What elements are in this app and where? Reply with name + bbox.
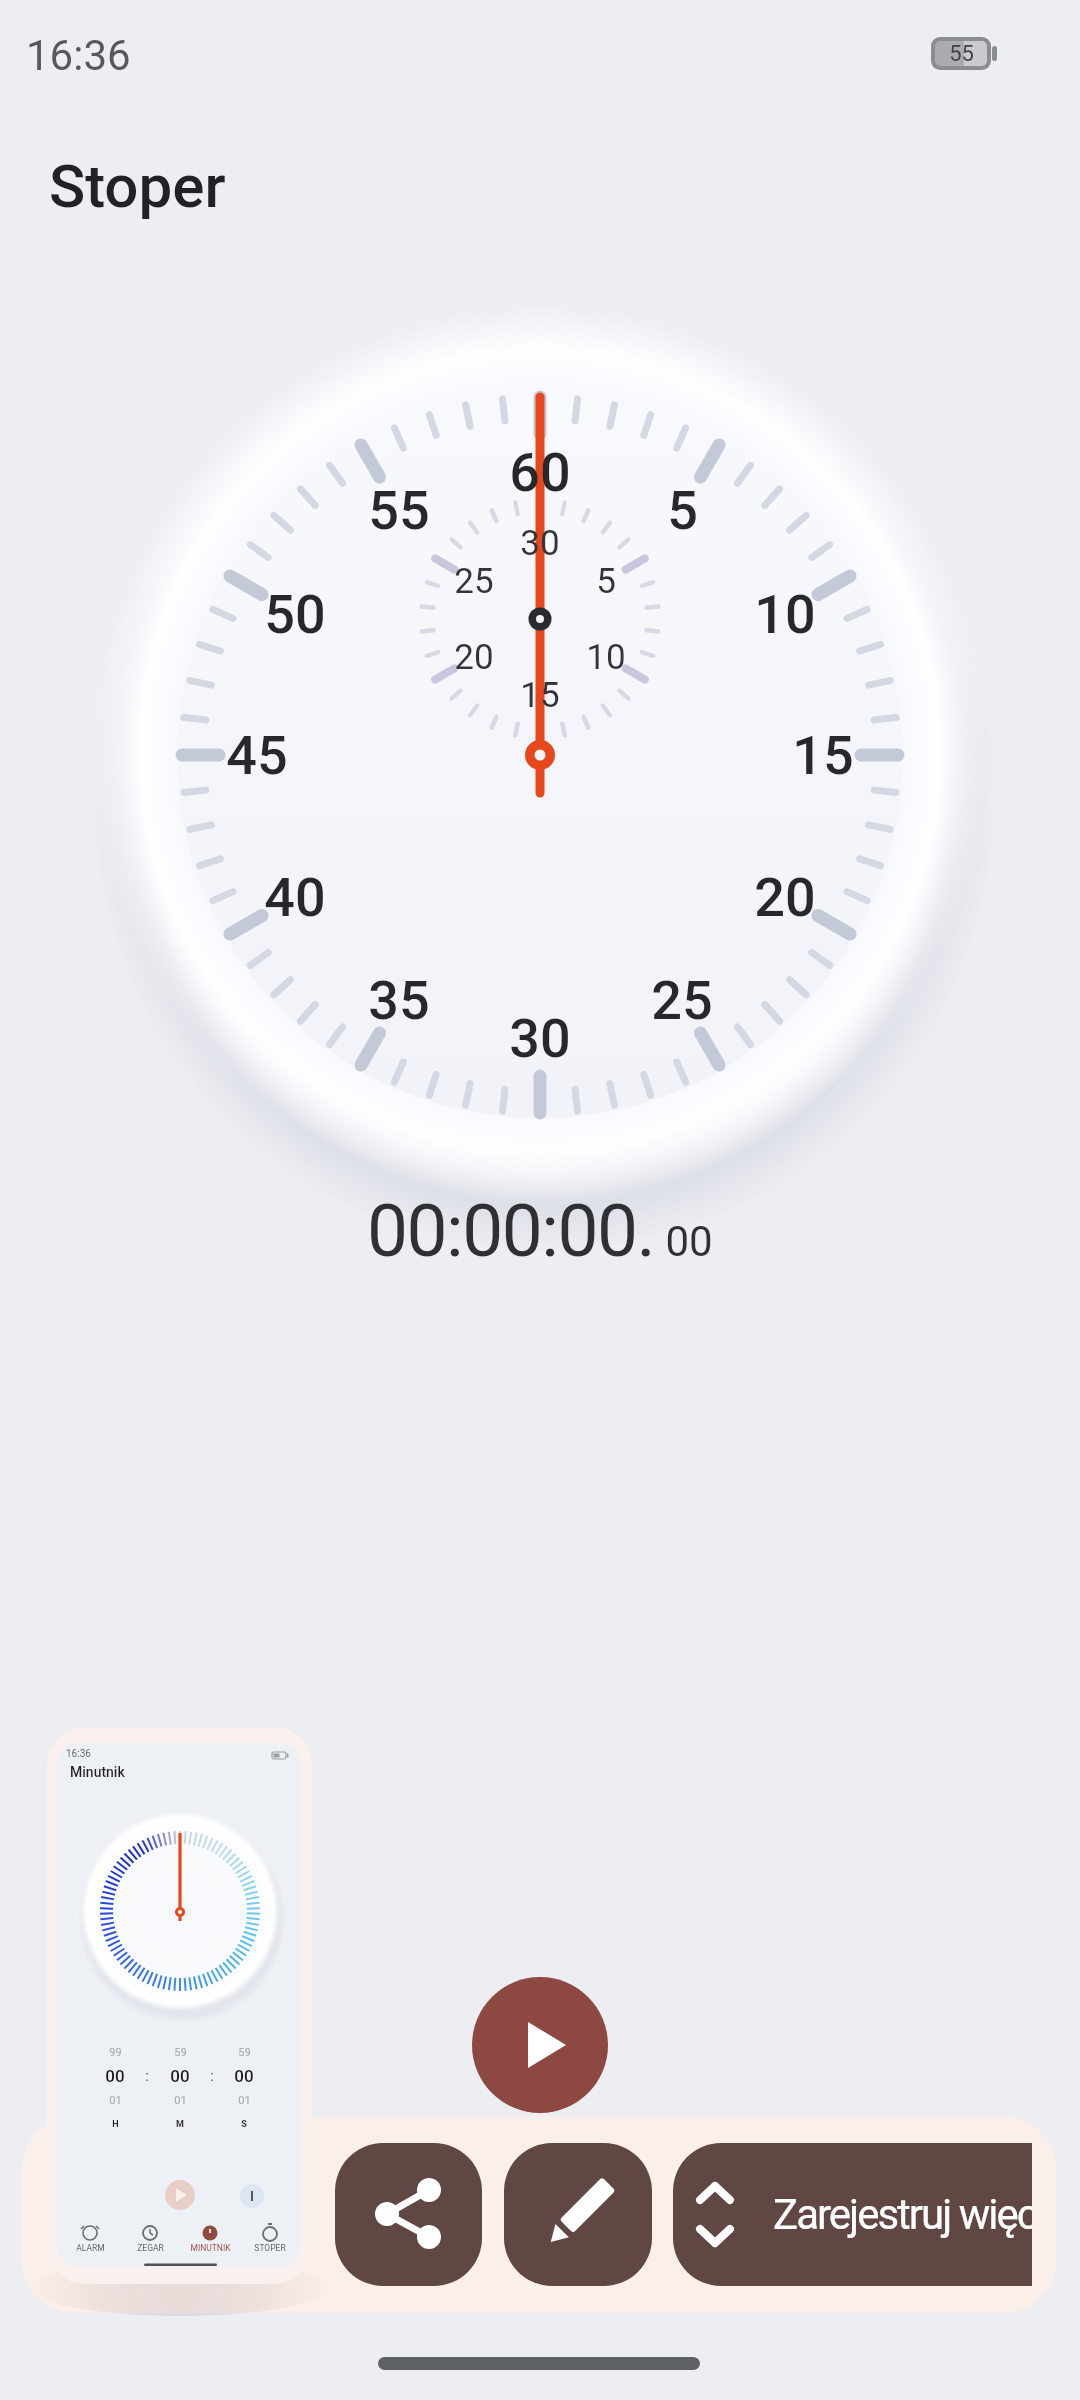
staticText: 01 [109,2094,122,2107]
staticText: M [176,2119,184,2130]
staticText: 20 [754,866,816,929]
staticText: Stoper [49,151,226,221]
staticText: 99 [109,2046,122,2059]
staticText: 00 [655,1217,713,1266]
staticText: S [241,2119,247,2130]
button[interactable]: Zarejestruj więcej [673,2143,1032,2286]
staticText: 59 [174,2046,187,2059]
staticText: 00 [105,2066,125,2086]
staticText: 55 [949,41,974,67]
staticText: 00 [234,2066,254,2086]
staticText: 30 [520,523,560,564]
staticText: 16:36 [66,1748,91,1760]
staticText: 30 [509,1007,571,1070]
button[interactable] [472,1977,608,2113]
button[interactable] [47,1727,312,2284]
button[interactable] [504,2143,652,2286]
staticText: 40 [264,866,326,929]
staticText: 15 [520,675,560,716]
staticText: 5 [596,561,616,602]
staticText: 15 [792,724,854,787]
staticText: ALARM [76,2243,105,2253]
staticText: 00:00:00. [367,1188,655,1274]
staticText: 50 [264,583,326,646]
staticText: 10 [754,583,816,646]
staticText: 5 [667,479,698,542]
staticText: STOPER [254,2243,286,2253]
staticText: 35 [368,969,430,1032]
staticText: ZEGAR [137,2243,164,2253]
staticText: 60 [509,441,571,504]
staticText: 55 [368,479,430,542]
staticText: 20 [454,637,494,678]
staticText: Minutnik [70,1764,125,1780]
staticText: 45 [226,724,288,787]
staticText: H [112,2119,119,2130]
button[interactable] [335,2143,482,2286]
staticText: 16:36 [26,31,131,80]
staticText: 01 [238,2094,251,2107]
staticText: 25 [454,561,494,602]
staticText: 00 [170,2066,190,2086]
staticText: 25 [651,969,713,1032]
staticText: 59 [238,2046,251,2059]
staticText: : [145,2067,149,2085]
staticText: : [210,2067,214,2085]
staticText: 10 [586,637,626,678]
staticText: 01 [174,2094,187,2107]
staticText: MINUTNIK [190,2243,231,2253]
staticText: Zarejestruj więcej [773,2190,1032,2239]
